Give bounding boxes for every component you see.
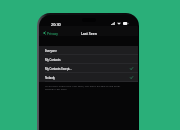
button[interactable]: My Contacts: [39, 55, 138, 64]
staticText: If you don't share your Last Seen, you w…: [45, 84, 121, 90]
button[interactable]: Everyone: [39, 46, 138, 55]
button[interactable]: Privacy: [43, 31, 58, 35]
staticText: My Contacts Except...: [45, 67, 72, 71]
staticText: Everyone: [45, 49, 57, 53]
staticText: 20:30: [51, 22, 61, 27]
staticText: Privacy: [47, 31, 58, 35]
staticText: Last Seen: [81, 31, 97, 36]
staticText: My Contacts: [45, 58, 61, 62]
button[interactable]: Nobody: [39, 73, 138, 82]
button[interactable]: My Contacts Except...: [39, 64, 138, 73]
staticText: Nobody: [45, 76, 55, 80]
